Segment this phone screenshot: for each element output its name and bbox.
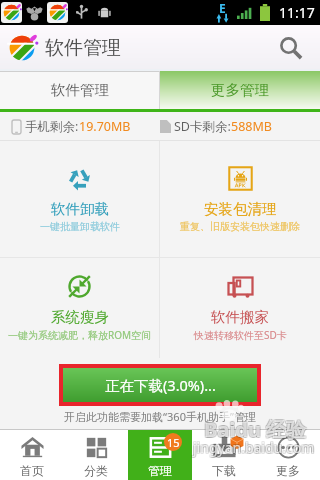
staticText: 软件管理 bbox=[45, 36, 121, 60]
staticText: 手机剩余: bbox=[25, 118, 79, 135]
button[interactable]: 更多管理 bbox=[160, 71, 320, 109]
staticText: 15 bbox=[167, 435, 180, 450]
staticText: 11:17 bbox=[279, 3, 315, 22]
staticText: 一键批量卸载软件 bbox=[40, 220, 120, 233]
staticText: jingyan.baidu.com bbox=[193, 437, 315, 456]
staticText: 正在下载(3.0%)... bbox=[105, 375, 216, 395]
staticText: Baidu 经验 bbox=[203, 416, 306, 443]
staticText: 19.70MB bbox=[79, 118, 131, 135]
staticText: jingyan.baidu.com bbox=[194, 439, 316, 458]
staticText: jingyan.baidu.com bbox=[192, 438, 314, 457]
staticText: 软件管理 bbox=[51, 81, 109, 99]
staticText: 软件搬家 bbox=[211, 308, 269, 326]
staticText: Baidu 经验 bbox=[203, 415, 306, 442]
staticText: Baidu 经验 bbox=[205, 417, 308, 444]
staticText: jingyan.baidu.com bbox=[194, 438, 316, 457]
staticText: 588MB bbox=[231, 118, 272, 135]
staticText: Baidu 经验 bbox=[204, 417, 307, 444]
button[interactable]: 系统瘦身 bbox=[0, 258, 159, 358]
button[interactable]: 正在下载(3.0%)... bbox=[63, 368, 257, 402]
staticText: 更多 bbox=[276, 463, 300, 478]
staticText: 快速转移软件至SD卡 bbox=[194, 328, 287, 342]
staticText: jingyan.baidu.com bbox=[193, 439, 315, 458]
button[interactable]: 15 bbox=[128, 430, 192, 480]
button[interactable]: 首页 bbox=[0, 430, 64, 480]
staticText: Baidu 经验 bbox=[205, 416, 308, 443]
staticText: Baidu 经验 bbox=[204, 416, 307, 443]
button[interactable]: 下载 bbox=[192, 430, 256, 480]
staticText: 开启此功能需要加载“360手机助手”管理 bbox=[0, 409, 320, 424]
staticText: jingyan.baidu.com bbox=[192, 437, 314, 456]
staticText: 下载 bbox=[212, 463, 236, 478]
button[interactable]: 软件卸载 bbox=[0, 141, 159, 257]
staticText: jingyan.baidu.com bbox=[192, 439, 314, 458]
staticText: 软件卸载 bbox=[51, 200, 109, 218]
staticText: SD卡剩余: bbox=[174, 118, 231, 135]
staticText: 首页 bbox=[20, 463, 44, 478]
staticText: Baidu 经验 bbox=[204, 415, 307, 442]
button[interactable]: 分类 bbox=[64, 430, 128, 480]
button[interactable]: 安装包清理 bbox=[160, 141, 320, 257]
staticText: jingyan.baidu.com bbox=[194, 437, 316, 456]
button[interactable]: 更多 bbox=[256, 430, 320, 480]
button[interactable]: 软件管理 bbox=[0, 71, 159, 109]
staticText: 系统瘦身 bbox=[51, 308, 109, 326]
staticText: Baidu 经验 bbox=[205, 415, 308, 442]
staticText: jingyan.baidu.com bbox=[193, 438, 315, 457]
staticText: 一键为系统减肥，释放ROM空间 bbox=[8, 328, 152, 342]
staticText: Baidu 经验 bbox=[203, 417, 306, 444]
button[interactable]: Search bbox=[274, 31, 308, 65]
staticText: 安装包清理 bbox=[204, 200, 277, 218]
staticText: E bbox=[219, 0, 226, 16]
staticText: 分类 bbox=[84, 463, 108, 478]
staticText: 管理 bbox=[148, 463, 172, 478]
button[interactable]: 软件搬家 bbox=[160, 258, 320, 358]
staticText: 重复、旧版安装包快速删除 bbox=[180, 220, 300, 233]
staticText: 更多管理 bbox=[211, 81, 269, 99]
